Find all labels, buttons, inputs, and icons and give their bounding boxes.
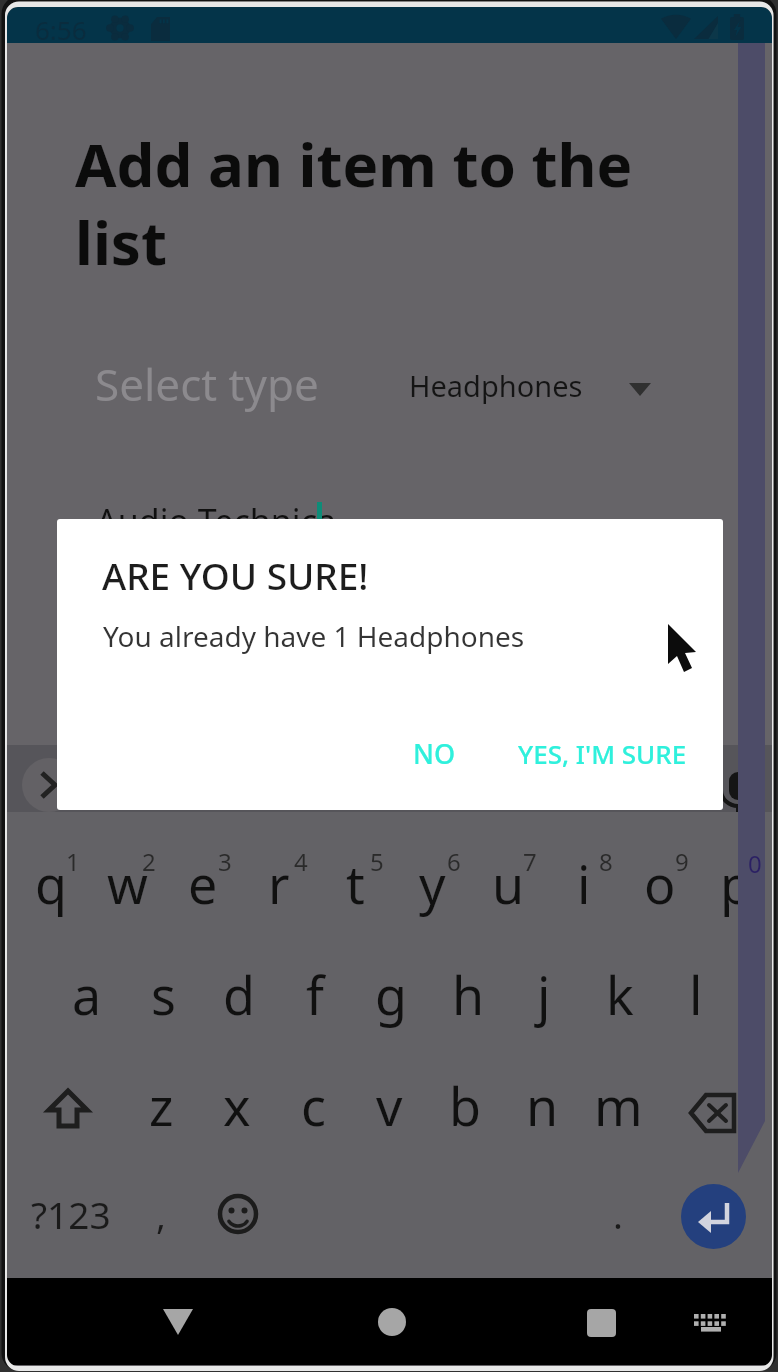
button[interactable] xyxy=(130,1160,196,1256)
staticText: x xyxy=(223,1070,251,1141)
staticText: j xyxy=(537,959,551,1030)
staticText: Select type xyxy=(95,354,319,414)
button[interactable]: e xyxy=(165,830,241,935)
staticText: o xyxy=(644,848,676,919)
staticText: d xyxy=(223,959,255,1030)
staticText: 2 xyxy=(142,845,156,878)
button[interactable] xyxy=(10,1160,125,1256)
button[interactable]: Backspace xyxy=(686,1089,746,1139)
staticText: NO xyxy=(413,735,456,772)
staticText: . xyxy=(613,1189,623,1239)
staticText: g xyxy=(375,959,407,1030)
staticText: 4 xyxy=(294,845,308,878)
button[interactable]: h xyxy=(430,936,506,1040)
button[interactable] xyxy=(590,1160,656,1256)
button[interactable]: YES, I'M SURE xyxy=(507,726,697,780)
button[interactable]: w xyxy=(89,830,165,935)
staticText: 3 xyxy=(218,845,232,878)
button[interactable]: z xyxy=(123,1044,199,1148)
button[interactable]: g xyxy=(353,936,429,1040)
staticText: 0 xyxy=(751,845,765,878)
button[interactable]: l xyxy=(658,936,734,1040)
staticText: u xyxy=(492,848,525,919)
staticText: 9 xyxy=(675,845,689,878)
staticText: 1 xyxy=(66,845,80,878)
button[interactable]: y xyxy=(394,830,470,935)
staticText: n xyxy=(526,1070,559,1141)
staticText: e xyxy=(188,848,218,919)
staticText: 6 xyxy=(447,845,461,878)
staticText: 5 xyxy=(370,845,384,878)
staticText: s xyxy=(151,959,176,1030)
staticText: ARE YOU SURE! xyxy=(102,550,369,600)
staticText: t xyxy=(346,848,365,919)
staticText: k xyxy=(606,959,634,1030)
button[interactable]: r xyxy=(241,830,317,935)
staticText: q xyxy=(35,848,67,919)
staticText: 7 xyxy=(523,845,537,878)
staticText: 8 xyxy=(599,845,613,878)
button[interactable]: c xyxy=(275,1044,351,1148)
button[interactable]: Shift xyxy=(41,1086,105,1138)
button[interactable]: a xyxy=(49,936,125,1040)
staticText: a xyxy=(72,959,102,1030)
button[interactable]: o xyxy=(622,830,698,935)
staticText: 0 xyxy=(748,847,762,880)
button[interactable]: u xyxy=(470,830,546,935)
button[interactable]: Back xyxy=(149,1293,209,1353)
button[interactable]: Recents xyxy=(571,1293,631,1353)
button[interactable]: x xyxy=(199,1044,275,1148)
button[interactable]: p xyxy=(698,830,774,935)
button[interactable]: Emoji xyxy=(205,1160,271,1256)
button[interactable]: v xyxy=(351,1044,427,1148)
button[interactable]: j xyxy=(506,936,582,1040)
staticText: YES, I'M SURE xyxy=(518,736,687,771)
staticText: ?123 xyxy=(31,1189,111,1239)
staticText: You already have 1 Headphones xyxy=(103,617,525,655)
staticText: Add an item to the list xyxy=(75,123,633,283)
button[interactable]: i xyxy=(546,830,622,935)
staticText: h xyxy=(452,959,485,1030)
button[interactable]: NO xyxy=(382,726,486,780)
staticText: r xyxy=(268,848,290,919)
button[interactable]: q xyxy=(13,830,89,935)
staticText: i xyxy=(577,848,591,919)
staticText: z xyxy=(149,1070,174,1141)
button[interactable]: Expand suggestions xyxy=(22,758,76,812)
staticText: l xyxy=(689,959,703,1030)
staticText: , xyxy=(156,1189,166,1239)
staticText: w xyxy=(107,848,148,919)
button[interactable]: Voice input xyxy=(712,760,764,812)
staticText: y xyxy=(419,848,446,919)
staticText: Audio Technica xyxy=(96,498,337,544)
staticText: 6:56 xyxy=(35,12,87,47)
staticText: c xyxy=(301,1070,326,1141)
button[interactable]: n xyxy=(504,1044,580,1148)
button[interactable]: d xyxy=(201,936,277,1040)
staticText: f xyxy=(306,959,324,1030)
button[interactable]: t xyxy=(317,830,393,935)
button[interactable]: s xyxy=(125,936,201,1040)
button[interactable]: m xyxy=(580,1044,656,1148)
staticText: p xyxy=(720,848,752,919)
button[interactable]: b xyxy=(427,1044,503,1148)
button[interactable]: Switch keyboard xyxy=(680,1300,736,1356)
button[interactable]: Enter xyxy=(681,1184,746,1249)
staticText: v xyxy=(376,1070,403,1141)
button[interactable]: k xyxy=(582,936,658,1040)
staticText: b xyxy=(449,1070,481,1141)
button[interactable]: Home xyxy=(362,1293,422,1353)
staticText: m xyxy=(594,1070,643,1141)
staticText: Headphones xyxy=(409,366,583,405)
button[interactable]: f xyxy=(277,936,353,1040)
